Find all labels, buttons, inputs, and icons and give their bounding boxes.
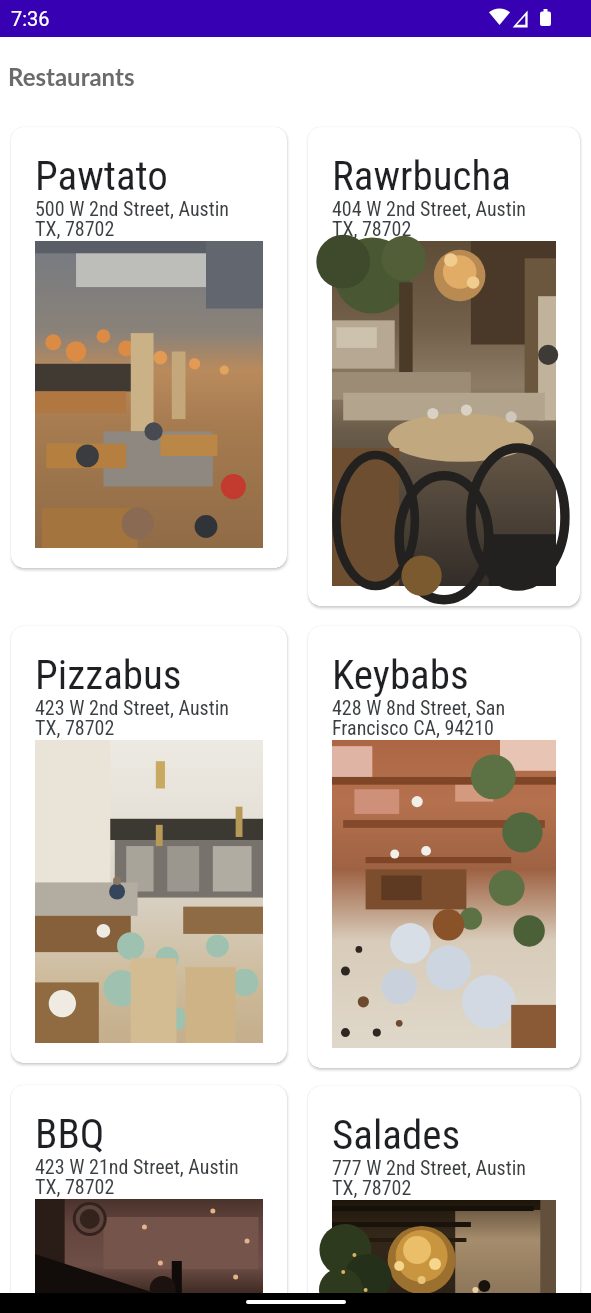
staticText: Pizzabus	[35, 651, 182, 699]
staticText: Pawtato	[35, 152, 168, 200]
staticText: BBQ	[35, 1110, 105, 1158]
staticText: 428 W 8nd Street, San Francisco CA, 9421…	[332, 696, 506, 740]
button[interactable]: Pizzabus	[11, 626, 287, 1063]
staticText: 7:36	[11, 7, 50, 30]
staticText: Salades	[332, 1111, 461, 1159]
staticText: 423 W 2nd Street, Austin TX, 78702	[35, 696, 229, 740]
staticText: Restaurants	[8, 62, 135, 91]
staticText: Rawrbucha	[332, 152, 511, 200]
staticText: 404 W 2nd Street, Austin TX, 78702	[332, 197, 526, 241]
staticText: 777 W 2nd Street, Austin TX, 78702	[332, 1156, 526, 1200]
button[interactable]: Pawtato	[11, 127, 287, 568]
button[interactable]: BBQ	[11, 1085, 287, 1313]
button[interactable]: Rawrbucha	[308, 127, 580, 606]
staticText: 423 W 21nd Street, Austin TX, 78702	[35, 1155, 239, 1199]
staticText: Keybabs	[332, 651, 469, 699]
staticText: 500 W 2nd Street, Austin TX, 78702	[35, 197, 229, 241]
button[interactable]: Keybabs	[308, 626, 580, 1068]
button[interactable]: Salades	[308, 1086, 580, 1313]
